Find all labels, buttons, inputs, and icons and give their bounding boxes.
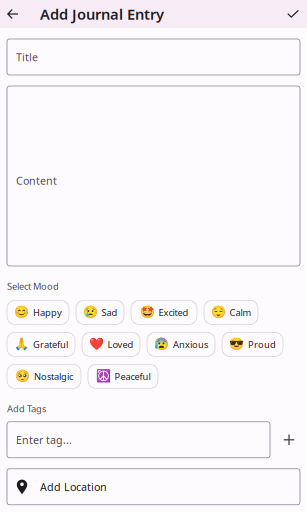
staticText: Happy (33, 306, 62, 319)
staticText: 😰 (154, 337, 169, 351)
staticText: Peaceful (114, 370, 150, 383)
staticText: Add Tags (7, 402, 46, 415)
button[interactable]: 😊 (7, 300, 69, 324)
button[interactable]: 🥺 (7, 364, 81, 388)
staticText: Content (16, 173, 57, 188)
staticText: Title (16, 50, 38, 64)
staticText: Add Location (40, 480, 107, 494)
button[interactable]: Enter tag... (7, 422, 270, 458)
button[interactable]: Add Location (7, 469, 300, 505)
button[interactable]: 😢 (76, 300, 124, 324)
staticText: 😌 (210, 305, 225, 319)
button[interactable]: Back (0, 0, 26, 28)
button[interactable]: 😎 (222, 332, 283, 356)
staticText: Add Journal Entry (40, 4, 164, 24)
staticText: Nostalgic (34, 370, 73, 383)
button[interactable]: 😰 (147, 332, 215, 356)
button[interactable]: ❤️ (82, 332, 140, 356)
button[interactable]: ☮️ (88, 364, 158, 388)
button[interactable]: 😌 (204, 300, 258, 324)
staticText: 😊 (14, 305, 29, 319)
staticText: Anxious (173, 338, 208, 351)
staticText: ❤️ (88, 337, 103, 351)
staticText: 😎 (229, 337, 244, 351)
button[interactable]: Title (7, 39, 300, 75)
staticText: Excited (158, 306, 188, 319)
button[interactable]: Content (7, 86, 300, 266)
staticText: ☮️ (95, 369, 110, 383)
staticText: 🤩 (139, 305, 154, 319)
staticText: Loved (107, 338, 133, 351)
staticText: Enter tag... (16, 433, 72, 447)
button[interactable]: Save (285, 0, 307, 28)
staticText: Grateful (33, 338, 68, 351)
staticText: 😢 (82, 305, 97, 319)
staticText: Calm (229, 306, 251, 319)
button[interactable]: 🤩 (131, 300, 197, 324)
staticText: 🙏 (14, 337, 29, 351)
staticText: Proud (248, 338, 276, 351)
button[interactable]: Add tag (278, 425, 300, 455)
staticText: Select Mood (7, 280, 59, 292)
staticText: 🥺 (15, 369, 30, 383)
staticText: Sad (101, 306, 117, 319)
button[interactable]: 🙏 (7, 332, 75, 356)
